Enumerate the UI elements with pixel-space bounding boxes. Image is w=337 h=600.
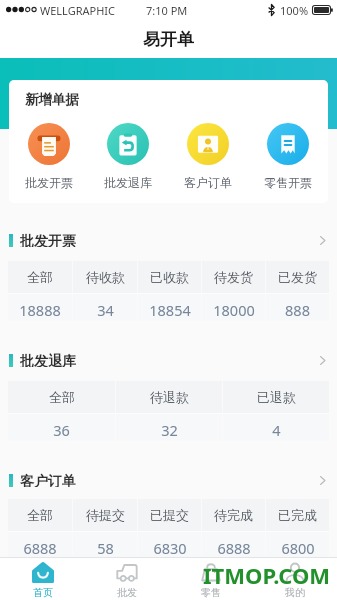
staticText: 首页 <box>33 586 53 599</box>
staticText: 待完成 <box>214 507 253 523</box>
staticText: 6888 <box>217 538 251 558</box>
staticText: 6888 <box>23 538 57 558</box>
staticText: 7:10 PM <box>146 3 188 18</box>
button[interactable]: 批发开票 <box>9 123 88 190</box>
staticText: 888 <box>285 300 310 320</box>
button[interactable]: Retail <box>169 557 253 600</box>
staticText: 零售开票 <box>264 175 312 190</box>
button[interactable]: 零售开票 <box>248 123 328 190</box>
staticText: 批发开票 <box>20 233 76 247</box>
staticText: 32 <box>161 420 178 440</box>
staticText: 已发货 <box>278 269 317 285</box>
staticText: 待发货 <box>214 269 253 285</box>
staticText: 我的 <box>285 586 305 599</box>
staticText: 100% <box>280 3 309 18</box>
button[interactable]: 批发开票 <box>0 233 337 247</box>
staticText: 批发开票 <box>25 175 73 190</box>
staticText: 客户订单 <box>20 473 76 487</box>
staticText: 已提交 <box>150 507 189 523</box>
staticText: 6830 <box>153 538 187 558</box>
staticText: 18854 <box>149 300 191 320</box>
staticText: 58 <box>97 538 114 558</box>
button[interactable]: 客户订单 <box>168 123 248 190</box>
staticText: 待收款 <box>86 269 125 285</box>
staticText: 已完成 <box>278 507 317 523</box>
staticText: 待退款 <box>150 389 189 405</box>
button[interactable]: 批发退库 <box>88 123 168 190</box>
staticText: 36 <box>53 420 70 440</box>
button[interactable]: 客户订单 <box>0 473 337 487</box>
staticText: 零售 <box>201 586 221 599</box>
button[interactable]: Home <box>0 557 85 600</box>
staticText: 客户订单 <box>184 175 232 190</box>
staticText: 18000 <box>213 300 255 320</box>
staticText: 全部 <box>49 389 75 405</box>
staticText: 已收款 <box>150 269 189 285</box>
staticText: 全部 <box>27 507 53 523</box>
staticText: 批发 <box>117 586 137 599</box>
staticText: 批发退库 <box>20 353 76 367</box>
staticText: 批发退库 <box>104 175 152 190</box>
staticText: 全部 <box>27 269 53 285</box>
staticText: 18888 <box>19 300 61 320</box>
staticText: 待提交 <box>86 507 125 523</box>
staticText: 已退款 <box>257 389 296 405</box>
staticText: 新增单据 <box>25 91 79 108</box>
staticText: 34 <box>97 300 114 320</box>
staticText: ITMOP.COM <box>203 560 331 590</box>
button[interactable]: Wholesale <box>85 557 169 600</box>
button[interactable]: Profile <box>253 557 337 600</box>
button[interactable]: 批发退库 <box>0 353 337 367</box>
staticText: 6800 <box>281 538 315 558</box>
staticText: WELLGRAPHIC <box>40 3 116 18</box>
staticText: 4 <box>272 420 281 440</box>
staticText: 易开单 <box>143 29 194 50</box>
